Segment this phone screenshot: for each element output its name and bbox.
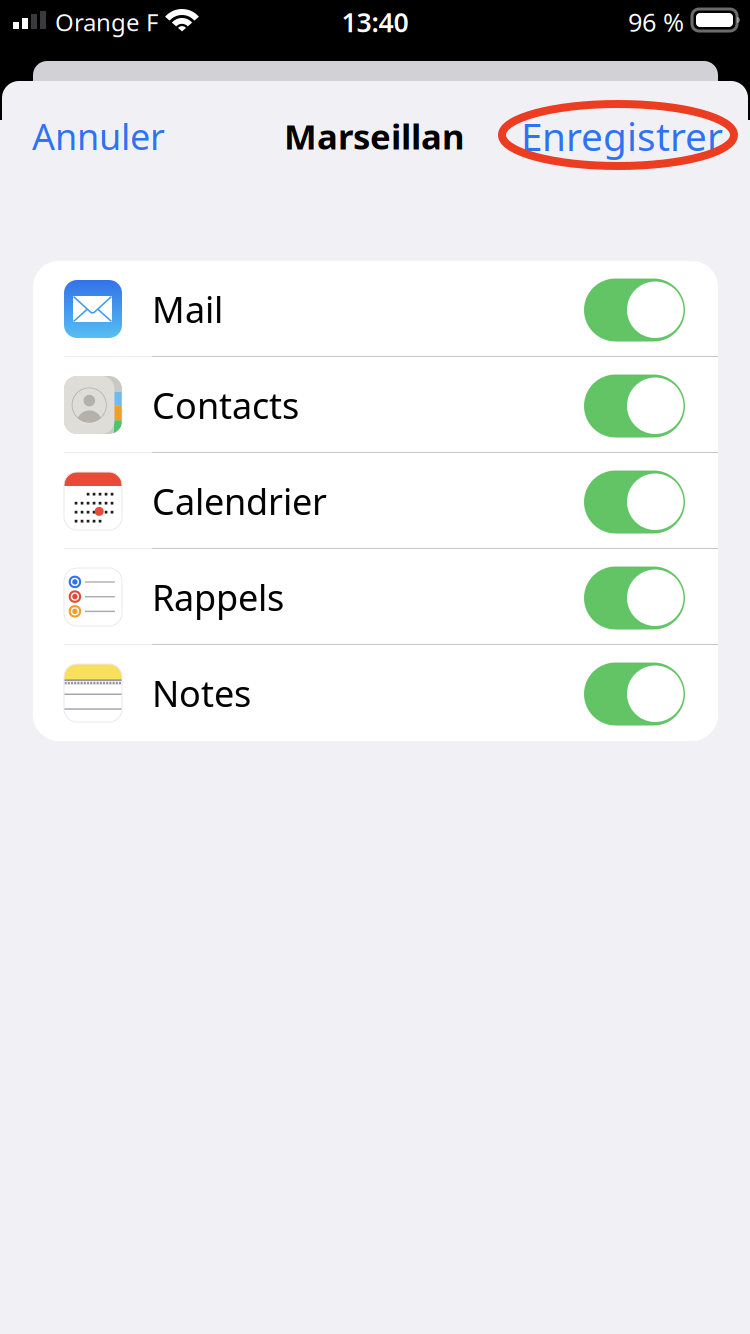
staticText: Annuler [32, 112, 165, 160]
staticText: 96 % [628, 5, 684, 39]
staticText: Marseillan [284, 113, 465, 159]
staticText: Orange F [55, 6, 158, 38]
button[interactable]: Mail [33, 261, 718, 357]
staticText: Notes [152, 669, 251, 717]
staticText: Calendrier [152, 477, 327, 525]
button[interactable]: Notes [33, 645, 718, 741]
staticText: Contacts [152, 381, 299, 429]
staticText: 13:40 [341, 4, 408, 40]
button[interactable]: Annuler [32, 111, 202, 161]
button[interactable]: Rappels [33, 549, 718, 645]
button[interactable]: Contacts [33, 357, 718, 453]
button[interactable]: Enregistrer [521, 111, 741, 161]
staticText: Rappels [152, 573, 284, 621]
button[interactable]: Calendrier [33, 453, 718, 549]
staticText: Enregistrer [521, 110, 723, 162]
staticText: Mail [152, 285, 223, 333]
